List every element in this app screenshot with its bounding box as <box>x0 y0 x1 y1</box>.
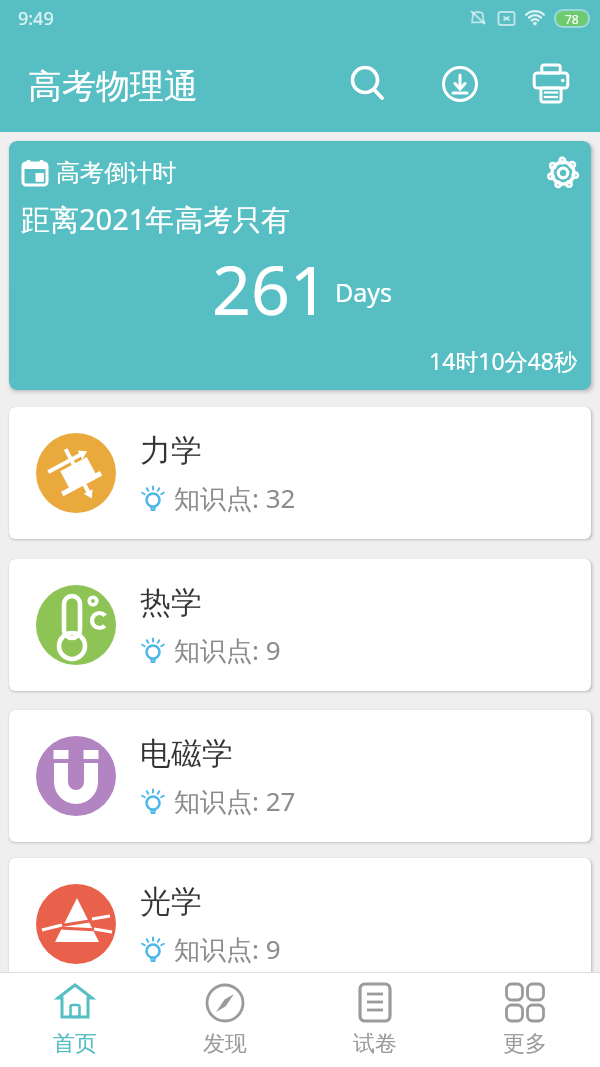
button[interactable]: 光学 <box>9 858 591 990</box>
staticText: 14时10分48秒 <box>429 345 577 376</box>
staticText: 距离2021年高考只有 <box>21 199 291 239</box>
button[interactable]: 热学 <box>9 559 591 691</box>
button[interactable]: 更多 <box>450 973 600 1067</box>
staticText: 首页 <box>53 1030 97 1058</box>
staticText: 发现 <box>203 1030 247 1058</box>
button[interactable] <box>529 62 573 106</box>
button[interactable]: 试卷 <box>300 973 450 1067</box>
staticText: 高考物理通 <box>28 65 198 108</box>
staticText: 知识点: 27 <box>174 783 296 819</box>
staticText: 力学 <box>140 431 202 470</box>
staticText: 知识点: 9 <box>174 931 281 967</box>
staticText: 试卷 <box>353 1030 397 1058</box>
staticText: 知识点: 9 <box>174 632 281 668</box>
staticText: 知识点: 32 <box>174 480 296 516</box>
button[interactable]: 高考倒计时 <box>9 141 591 390</box>
staticText: 更多 <box>503 1030 547 1058</box>
staticText: 热学 <box>140 583 202 622</box>
staticText: Days <box>335 275 393 309</box>
button[interactable]: 力学 <box>9 407 591 539</box>
button[interactable]: 首页 <box>0 973 150 1067</box>
staticText: 78 <box>565 11 579 27</box>
button[interactable]: 发现 <box>150 973 300 1067</box>
staticText: 电磁学 <box>140 734 233 773</box>
button[interactable] <box>346 62 390 106</box>
staticText: 光学 <box>140 882 202 921</box>
button[interactable]: 电磁学 <box>9 710 591 842</box>
button[interactable] <box>543 153 583 193</box>
staticText: 9:49 <box>18 6 54 31</box>
staticText: 高考倒计时 <box>56 158 176 188</box>
button[interactable] <box>438 62 482 106</box>
staticText: 261 <box>212 242 329 335</box>
